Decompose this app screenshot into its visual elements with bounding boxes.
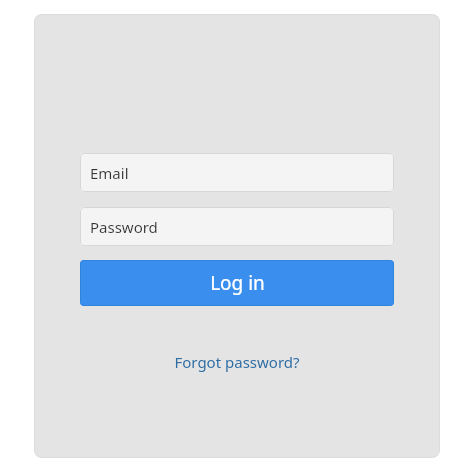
staticText: Email (90, 163, 129, 183)
button[interactable]: Password (80, 207, 394, 246)
staticText: Forgot password? (174, 352, 300, 372)
button[interactable]: Forgot password? (170, 349, 304, 375)
staticText: Password (90, 217, 158, 237)
staticText: Log in (210, 270, 265, 296)
button[interactable]: Email (80, 153, 394, 192)
button[interactable]: Log in (80, 260, 394, 306)
